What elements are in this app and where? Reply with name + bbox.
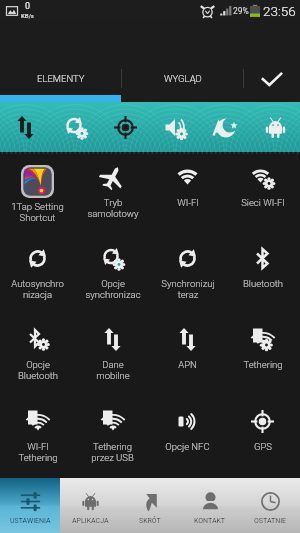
staticText: WI-FI Tethering <box>18 441 58 463</box>
staticText: WYGLĄD <box>164 73 202 84</box>
button[interactable]: OSTATNIE <box>240 478 300 533</box>
staticText: APLIKACJA <box>72 517 109 525</box>
button[interactable]: Sieci WI-FI <box>225 152 300 233</box>
button[interactable]: WI-FI <box>150 152 225 233</box>
staticText: KONTAKT <box>194 517 226 525</box>
staticText: Opcje synchronizac <box>85 278 141 300</box>
button[interactable]: Tryb samolotowy <box>75 152 150 233</box>
staticText: APN <box>178 359 197 370</box>
button[interactable]: Synchronizuj teraz <box>150 233 225 314</box>
staticText: Bluetooth <box>243 278 283 289</box>
staticText: Tethering <box>243 359 283 370</box>
button[interactable]: KONTAKT <box>180 478 240 533</box>
button[interactable]: Profile <box>200 102 250 152</box>
button[interactable]: Sound settings <box>150 102 200 152</box>
button[interactable]: Applications <box>250 102 300 152</box>
staticText: Tethering przez USB <box>91 441 134 463</box>
staticText: ELEMENTY <box>37 73 85 84</box>
button[interactable]: APN <box>150 314 225 396</box>
staticText: USTAWIENIA <box>10 517 51 525</box>
staticText: OSTATNIE <box>254 517 287 525</box>
staticText: Sieci WI-FI <box>241 197 285 208</box>
button[interactable]: Dane mobilne <box>75 314 150 396</box>
staticText: Opcje Bluetooth <box>18 359 58 381</box>
button[interactable]: ELEMENTY <box>0 62 121 95</box>
staticText: WI-FI <box>177 197 199 208</box>
staticText: KB/s <box>21 12 34 19</box>
staticText: Synchronizuj teraz <box>161 278 215 300</box>
staticText: Opcje NFC <box>165 441 210 452</box>
button[interactable]: Opcje NFC <box>150 396 225 478</box>
staticText: GPS <box>254 441 272 452</box>
button[interactable]: WI-FI Tethering <box>0 396 75 478</box>
button[interactable]: WYGLĄD <box>122 62 243 95</box>
button[interactable]: Bluetooth <box>225 233 300 314</box>
button[interactable]: APLIKACJA <box>60 478 120 533</box>
button[interactable]: Mobile data <box>0 102 50 152</box>
button[interactable]: Opcje synchronizac <box>75 233 150 314</box>
button[interactable]: Autosynchro nizacja <box>0 233 75 314</box>
button[interactable]: Confirm <box>244 62 300 95</box>
staticText: 23:56 <box>263 3 296 19</box>
button[interactable]: SKRÓT <box>120 478 180 533</box>
button[interactable]: 1Tap Setting Shortcut <box>0 152 75 233</box>
button[interactable]: Tethering <box>225 314 300 396</box>
staticText: 0 <box>25 1 31 12</box>
button[interactable]: Tethering przez USB <box>75 396 150 478</box>
staticText: 29% <box>233 6 249 16</box>
button[interactable]: GPS <box>100 102 150 152</box>
staticText: Autosynchro nizacja <box>11 278 64 300</box>
staticText: 1Tap Setting Shortcut <box>11 201 64 223</box>
staticText: SKRÓT <box>139 517 161 525</box>
button[interactable]: GPS <box>225 396 300 478</box>
staticText: Tryb samolotowy <box>87 197 139 219</box>
staticText: Dane mobilne <box>96 359 130 381</box>
button[interactable]: Opcje Bluetooth <box>0 314 75 396</box>
button[interactable]: USTAWIENIA <box>0 478 60 533</box>
button[interactable]: Auto sync <box>50 102 100 152</box>
